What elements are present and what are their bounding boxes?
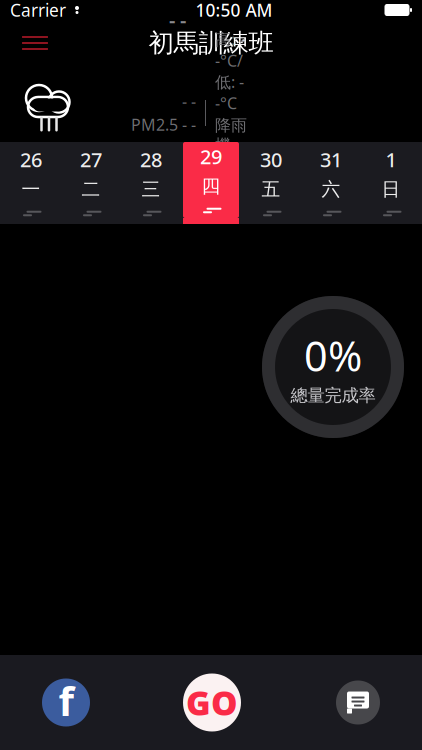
staticText: 高: - -°C/低: - -°C [215,29,244,114]
staticText: 一 [21,178,40,201]
button[interactable]: Share on Facebook [38,674,94,730]
button[interactable]: 28 [121,142,181,224]
staticText: 降雨機率- -% [215,116,247,197]
staticText: 初馬訓練班 [148,27,273,58]
staticText: 31 [320,146,342,173]
staticText: 五 [261,178,280,201]
button[interactable]: 26 [1,142,61,224]
staticText: f [58,674,73,727]
staticText: GO [186,680,238,725]
staticText: 四 [201,175,220,198]
staticText: - - [169,6,186,33]
staticText: 30 [260,146,282,173]
staticText: 27 [80,146,102,173]
button[interactable]: Menu [18,28,52,58]
staticText: 0% [304,328,362,383]
button[interactable]: 27 [61,142,121,224]
staticText: 10:50 AM [195,0,272,21]
button[interactable]: 30 [241,142,301,224]
button[interactable]: 31 [301,142,361,224]
staticText: 29 [200,143,222,170]
staticText: 26 [20,146,42,173]
button[interactable]: Start run [179,669,245,735]
staticText: Carrier [10,0,66,21]
staticText: - - [182,91,196,112]
staticText: 1 [385,146,396,173]
staticText: 三 [141,178,160,201]
staticText: 二 [81,178,100,201]
staticText: 總量完成率 [290,385,375,406]
button[interactable]: Messages [330,674,386,730]
staticText: 28 [140,146,162,173]
staticText: 六 [321,178,340,201]
staticText: PM2.5 - - [131,114,196,135]
button[interactable]: 29 [181,136,241,230]
staticText: 日 [381,178,400,201]
button[interactable]: 1 [361,142,421,224]
